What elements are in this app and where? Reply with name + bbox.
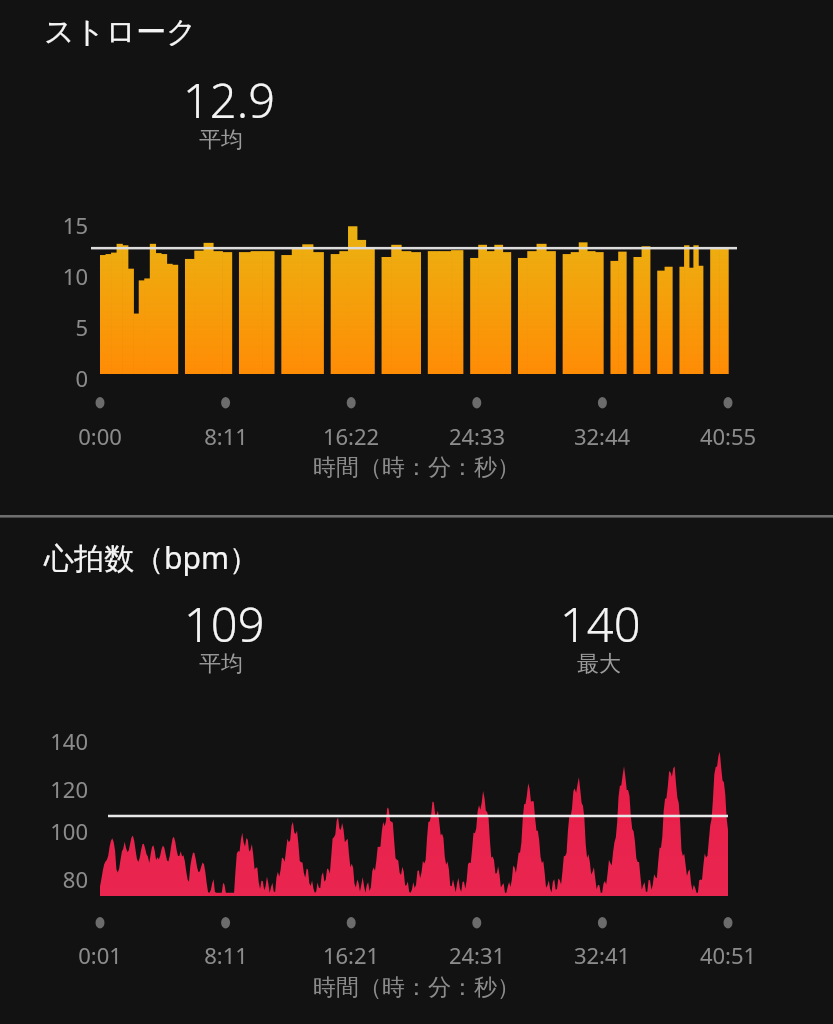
staticText: 0:01 [40, 940, 160, 970]
staticText: 8:11 [166, 421, 286, 451]
button[interactable]: 心拍数 グラフ [0, 518, 833, 1024]
staticText: 時間（時：分：秒） [0, 973, 833, 1002]
staticText: 40:51 [668, 940, 788, 970]
staticText: 平均 [199, 650, 243, 678]
staticText: 32:44 [542, 421, 662, 451]
staticText: 平均 [199, 126, 243, 154]
staticText: 15 [26, 210, 88, 240]
staticText: 最大 [577, 650, 621, 678]
staticText: 12.9 [183, 68, 275, 132]
staticText: 16:21 [291, 940, 411, 970]
staticText: 109 [184, 592, 265, 656]
staticText: 32:41 [542, 940, 662, 970]
staticText: 24:31 [417, 940, 537, 970]
button[interactable]: ストローク グラフ [0, 0, 833, 515]
staticText: 5 [26, 312, 88, 342]
staticText: ストローク [44, 13, 197, 51]
staticText: 0:00 [40, 421, 160, 451]
staticText: 心拍数（bpm） [44, 537, 259, 578]
staticText: 140 [26, 726, 88, 756]
staticText: 100 [26, 816, 88, 846]
staticText: 16:22 [291, 421, 411, 451]
staticText: 40:55 [668, 421, 788, 451]
staticText: 120 [26, 774, 88, 804]
staticText: 時間（時：分：秒） [0, 453, 833, 482]
staticText: 8:11 [166, 940, 286, 970]
staticText: 10 [26, 261, 88, 291]
staticText: 0 [26, 363, 88, 393]
staticText: 24:33 [417, 421, 537, 451]
staticText: 140 [560, 592, 641, 656]
staticText: 80 [26, 864, 88, 894]
